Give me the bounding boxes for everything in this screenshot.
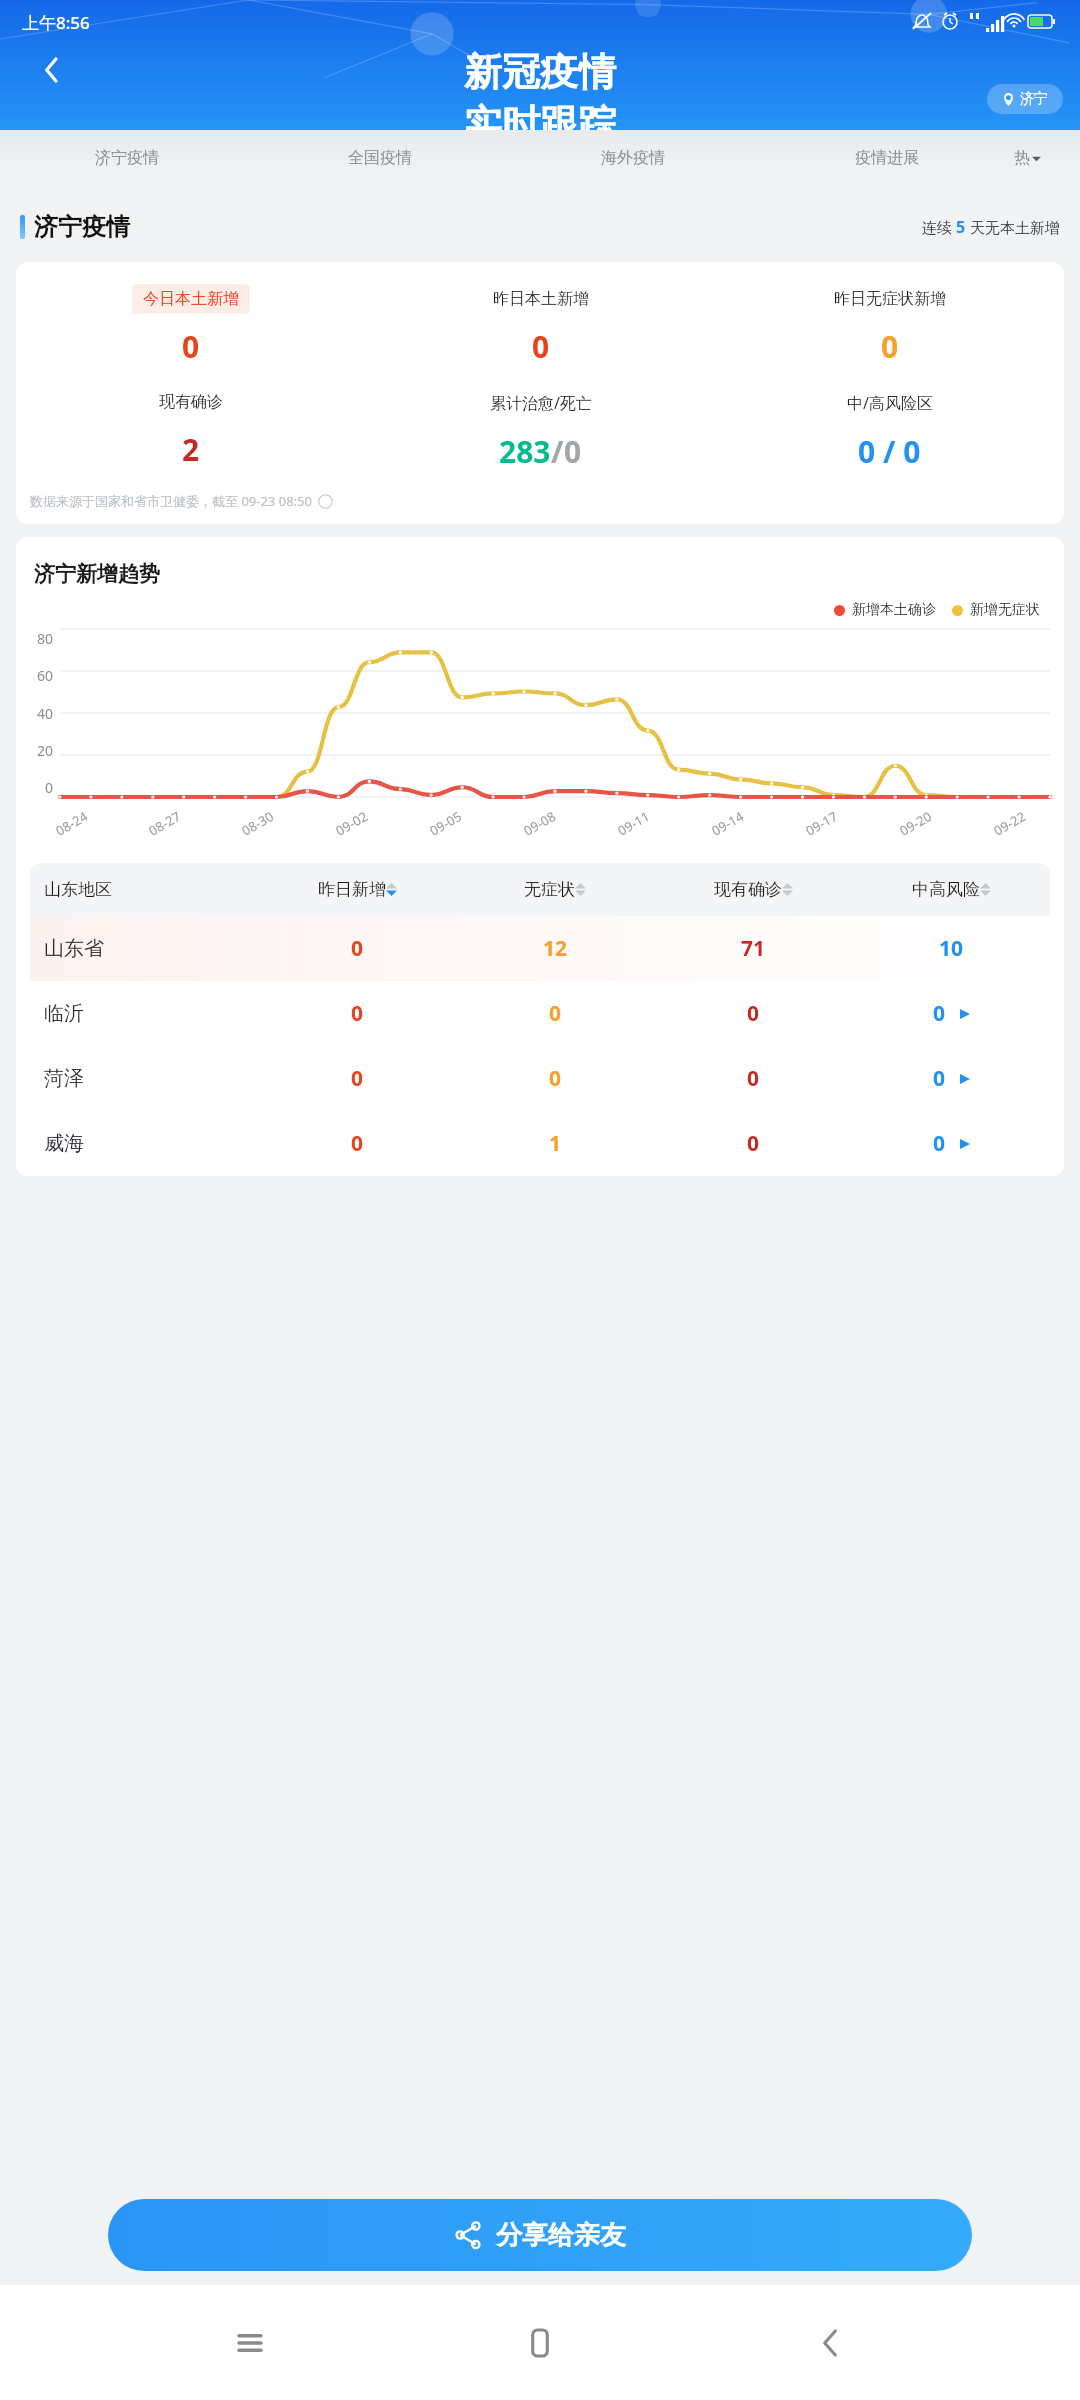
staticText: 菏泽 — [44, 1066, 258, 1091]
staticText: 60 — [37, 666, 54, 685]
button[interactable]: 分享给亲友 — [108, 2199, 972, 2271]
button[interactable]: Recents — [210, 2303, 290, 2383]
staticText: 昨日无症状新增 — [834, 289, 946, 309]
staticText: 临沂 — [44, 1001, 258, 1026]
button[interactable]: 威海 — [30, 1111, 1050, 1176]
button[interactable]: 热 — [1014, 130, 1080, 186]
staticText: 0 — [45, 778, 54, 797]
staticText: 上午8:56 — [22, 11, 90, 34]
staticText: 08-24 — [52, 807, 91, 840]
staticText: 无症状 — [524, 879, 575, 900]
staticText: 今日本土新增 — [143, 289, 239, 309]
button[interactable]: Back — [790, 2303, 870, 2383]
staticText: 疫情进展 — [855, 148, 919, 168]
staticText: 中/高风险区 — [847, 392, 933, 414]
staticText: 09-05 — [426, 807, 465, 840]
staticText: 0 — [182, 326, 200, 367]
staticText: 0 — [564, 431, 582, 472]
button[interactable]: 菏泽 — [30, 1046, 1050, 1111]
staticText: 1 — [549, 1129, 562, 1158]
staticText: 0 — [747, 1129, 760, 1158]
staticText: 0 — [747, 1064, 760, 1093]
staticText: 海外疫情 — [601, 148, 665, 168]
button[interactable]: 连续 — [922, 216, 1060, 238]
staticText: 济宁疫情 — [95, 148, 159, 168]
staticText: 0 — [747, 999, 760, 1028]
button[interactable]: 临沂 — [30, 981, 1050, 1046]
staticText: 71 — [741, 934, 766, 963]
staticText: 0 — [351, 934, 364, 963]
staticText: 累计治愈/死亡 — [490, 392, 592, 414]
staticText: 威海 — [44, 1131, 258, 1156]
button[interactable]: Back — [28, 46, 76, 94]
staticText: 0 — [549, 999, 562, 1028]
staticText: 0 — [351, 1064, 364, 1093]
staticText: 09-08 — [520, 807, 559, 840]
staticText: 20 — [37, 741, 54, 760]
staticText: 山东省 — [44, 936, 258, 961]
staticText: 283 — [499, 431, 551, 472]
button[interactable]: 山东省 — [30, 916, 1050, 981]
staticText: 09-11 — [614, 807, 653, 840]
staticText: 中高风险 — [912, 879, 980, 900]
staticText: 实时跟踪 — [464, 100, 616, 130]
staticText: 09-02 — [332, 807, 371, 840]
staticText: 现有确诊 — [714, 879, 782, 900]
staticText: 数据来源于国家和省市卫健委，截至 09-23 08:50 — [30, 492, 312, 510]
staticText: 0 — [933, 1129, 946, 1158]
button[interactable]: Home — [500, 2303, 580, 2383]
staticText: 连续 — [922, 217, 956, 237]
staticText: 12 — [543, 934, 568, 963]
staticText: 0 — [933, 999, 946, 1028]
button[interactable]: 济宁疫情 — [0, 130, 253, 186]
button[interactable]: 海外疫情 — [506, 130, 760, 186]
staticText: 0 — [881, 326, 899, 367]
staticText: 昨日本土新增 — [493, 289, 589, 309]
button[interactable]: 全国疫情 — [253, 130, 506, 186]
button[interactable]: 济宁 — [987, 84, 1063, 114]
staticText: 现有确诊 — [159, 392, 223, 412]
staticText: 2 — [182, 429, 200, 470]
staticText: 80 — [37, 629, 54, 648]
staticText: 新冠疫情 — [464, 48, 616, 96]
staticText: 热 — [1014, 148, 1030, 168]
staticText: 天无本土新增 — [966, 217, 1060, 237]
staticText: / — [551, 431, 564, 472]
staticText: 09-14 — [708, 807, 747, 840]
staticText: 0 — [351, 999, 364, 1028]
button[interactable]: 疫情进展 — [760, 130, 1014, 186]
staticText: 0 — [933, 1064, 946, 1093]
staticText: 昨日新增 — [318, 879, 386, 900]
staticText: 10 — [939, 934, 964, 963]
staticText: 08-30 — [238, 807, 277, 840]
staticText: 09-22 — [990, 807, 1029, 840]
staticText: 全国疫情 — [348, 148, 412, 168]
staticText: 09-17 — [802, 807, 841, 840]
staticText: 0 / 0 — [858, 431, 921, 472]
staticText: 09-20 — [896, 807, 935, 840]
staticText: 分享给亲友 — [496, 2219, 626, 2252]
staticText: 08-27 — [145, 807, 184, 840]
staticText: 济宁 — [1020, 90, 1048, 108]
staticText: 山东地区 — [44, 879, 258, 900]
staticText: 新增本土确诊 — [852, 601, 936, 619]
staticText: 40 — [37, 704, 54, 723]
staticText: 济宁新增趋势 — [34, 561, 160, 587]
staticText: 5 — [956, 216, 966, 238]
staticText: 新增无症状 — [970, 601, 1040, 619]
staticText: 0 — [351, 1129, 364, 1158]
staticText: 0 — [532, 326, 550, 367]
staticText: 0 — [549, 1064, 562, 1093]
staticText: 济宁疫情 — [34, 212, 130, 242]
button[interactable]: 今日本土新增 — [16, 262, 1064, 524]
